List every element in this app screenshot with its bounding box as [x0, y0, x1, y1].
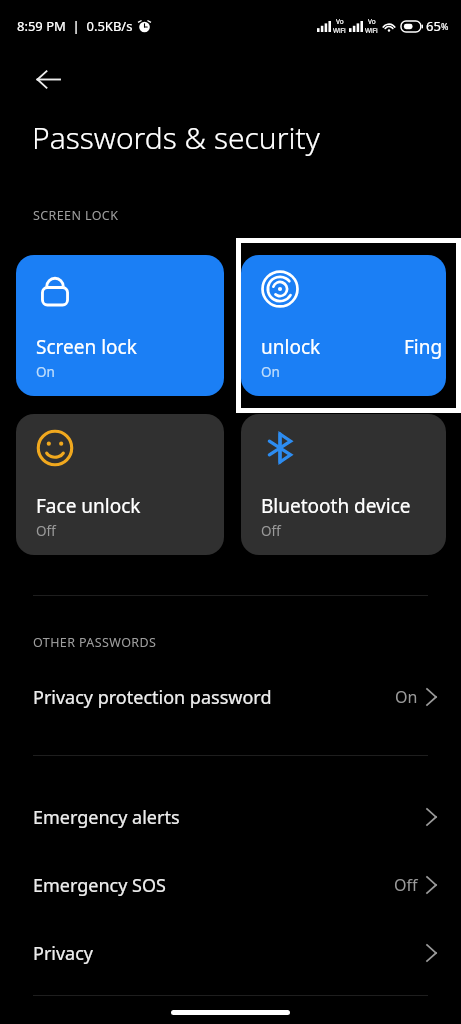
staticText: WiFi — [365, 26, 378, 35]
staticText: Bluetooth device — [261, 493, 411, 519]
button[interactable]: Emergency alerts — [0, 788, 461, 846]
button[interactable]: Back — [25, 56, 71, 102]
staticText: Face unlock — [36, 493, 141, 519]
staticText: On — [261, 363, 280, 381]
button[interactable]: Privacy protection password — [0, 668, 461, 726]
button[interactable]: Screen lock — [16, 255, 224, 396]
button[interactable]: Face unlock — [16, 414, 224, 555]
staticText: Off — [394, 874, 418, 896]
staticText: On — [395, 686, 418, 708]
staticText: Privacy — [33, 941, 94, 966]
button[interactable]: unlock — [241, 255, 446, 396]
staticText: Off — [36, 522, 56, 540]
staticText: unlock — [261, 334, 321, 360]
staticText: Privacy protection password — [33, 685, 272, 710]
staticText: Off — [261, 522, 281, 540]
staticText: Screen lock — [36, 334, 137, 360]
staticText: 8:59 PM | 0.5KB/s — [17, 17, 133, 35]
staticText: Passwords & security — [32, 117, 320, 158]
button[interactable]: Emergency SOS — [0, 856, 461, 914]
staticText: Vo — [336, 17, 344, 26]
staticText: Emergency SOS — [33, 873, 166, 898]
staticText: Emergency alerts — [33, 805, 180, 830]
staticText: SCREEN LOCK — [33, 207, 119, 224]
staticText: Fing — [404, 334, 443, 360]
staticText: 65 — [426, 17, 441, 35]
button[interactable]: Privacy — [0, 924, 461, 982]
staticText: OTHER PASSWORDS — [33, 634, 157, 651]
staticText: Vo — [368, 17, 376, 26]
staticText: % — [441, 20, 449, 32]
staticText: WiFi — [333, 26, 346, 35]
staticText: On — [36, 363, 55, 381]
button[interactable]: Bluetooth device — [241, 414, 446, 555]
